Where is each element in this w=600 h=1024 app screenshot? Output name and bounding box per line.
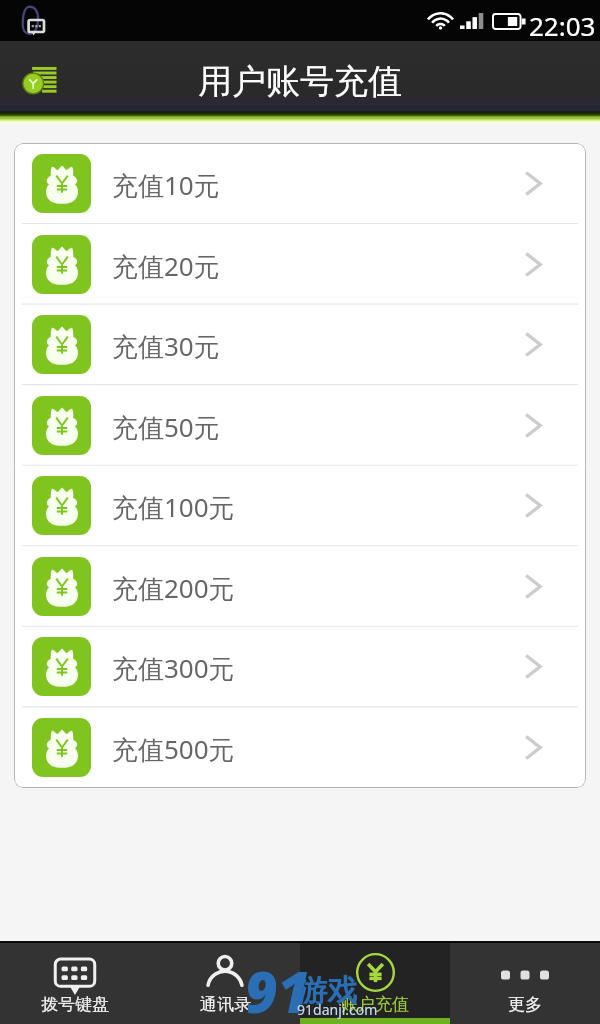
- button[interactable]: 充值10元: [14, 143, 586, 223]
- button[interactable]: 充值500元: [14, 707, 586, 787]
- button[interactable]: 通讯录: [150, 943, 300, 1024]
- staticText: 用户账号充值: [198, 60, 402, 103]
- button[interactable]: 账户充值: [300, 943, 450, 1024]
- staticText: 充值500元: [112, 731, 235, 767]
- staticText: 91danji.com: [297, 1000, 378, 1019]
- staticText: 充值100元: [112, 489, 235, 525]
- staticText: 充值200元: [112, 570, 235, 606]
- staticText: 充值300元: [112, 650, 235, 686]
- button[interactable]: 充值20元: [14, 224, 586, 304]
- button[interactable]: 更多: [450, 943, 600, 1024]
- button[interactable]: 充值300元: [14, 626, 586, 706]
- button[interactable]: Menu: [15, 52, 63, 100]
- button[interactable]: 充值50元: [14, 385, 586, 465]
- staticText: 22:03: [529, 8, 596, 43]
- staticText: 充值10元: [112, 167, 220, 203]
- staticText: 充值50元: [112, 409, 220, 445]
- staticText: 游戏: [297, 972, 357, 1010]
- staticText: 91: [245, 953, 310, 1024]
- staticText: 充值30元: [112, 328, 220, 364]
- button[interactable]: 拨号键盘: [0, 943, 150, 1024]
- button[interactable]: 充值100元: [14, 465, 586, 545]
- staticText: 账户充值: [341, 994, 409, 1015]
- staticText: 通讯录: [200, 994, 251, 1015]
- staticText: 拨号键盘: [41, 994, 109, 1015]
- staticText: 充值20元: [112, 248, 220, 284]
- button[interactable]: 充值200元: [14, 546, 586, 626]
- staticText: 更多: [508, 994, 542, 1015]
- button[interactable]: 充值30元: [14, 304, 586, 384]
